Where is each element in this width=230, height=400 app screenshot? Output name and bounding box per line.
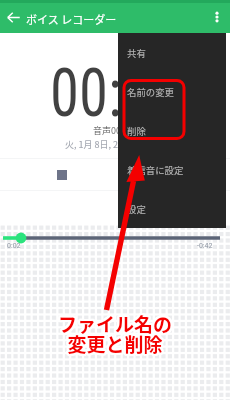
- staticText: 変更と削除: [0, 328, 229, 356]
- staticText: ファイル名の: [2, 311, 230, 339]
- staticText: ファイル名の: [0, 310, 230, 338]
- staticText: ファイル名の: [1, 308, 230, 336]
- staticText: 変更と削除: [0, 329, 228, 357]
- staticText: 音声007: [93, 124, 126, 137]
- staticText: 変更と削除: [0, 330, 228, 358]
- button[interactable]: 設定: [118, 189, 226, 228]
- staticText: ファイル名の: [1, 311, 230, 339]
- button[interactable]: 名前の変更: [118, 72, 226, 111]
- staticText: 変更と削除: [2, 330, 230, 358]
- staticText: 名前の変更: [127, 85, 174, 99]
- staticText: ファイル名の: [0, 310, 228, 338]
- button[interactable]: 着信音に設定: [118, 150, 226, 189]
- staticText: 変更と削除: [0, 328, 230, 356]
- staticText: ファイル名の: [2, 310, 230, 338]
- staticText: 変更と削除: [0, 329, 229, 357]
- button[interactable]: 共有: [118, 33, 226, 72]
- staticText: 変更と削除: [1, 329, 230, 357]
- staticText: ファイル名の: [0, 311, 229, 339]
- staticText: 変更と削除: [1, 332, 230, 360]
- staticText: ファイル名の: [0, 312, 229, 340]
- staticText: ファイル名の: [1, 309, 230, 337]
- staticText: ファイル名の: [0, 309, 228, 337]
- staticText: 変更と削除: [0, 330, 230, 358]
- staticText: ファイル名の: [0, 308, 230, 336]
- staticText: ファイル名の: [0, 312, 230, 340]
- staticText: ファイル名の: [0, 309, 229, 337]
- staticText: ボイス レコーダー: [26, 11, 117, 27]
- staticText: 変更と削除: [0, 332, 230, 360]
- staticText: 変更と削除: [1, 328, 230, 356]
- staticText: 変更と削除: [2, 331, 230, 359]
- staticText: 共有: [127, 46, 146, 60]
- staticText: 変更と削除: [0, 331, 229, 359]
- staticText: 変更と削除: [1, 331, 230, 359]
- staticText: 変更と削除: [2, 329, 230, 357]
- button[interactable]: Stop: [46, 159, 77, 190]
- staticText: ファイル名の: [0, 308, 229, 336]
- staticText: 設定: [127, 202, 146, 216]
- button[interactable]: Back: [2, 6, 24, 28]
- staticText: 変更と削除: [0, 332, 229, 360]
- button[interactable]: 削除: [118, 111, 226, 150]
- staticText: -0:42: [197, 242, 213, 250]
- button[interactable]: More options: [206, 6, 228, 28]
- staticText: 着信音に設定: [127, 163, 184, 177]
- staticText: ファイル名の: [1, 312, 230, 340]
- staticText: 変更と削除: [0, 331, 228, 359]
- staticText: ファイル名の: [2, 309, 230, 337]
- staticText: ファイル名の: [0, 311, 228, 339]
- staticText: 0:02: [7, 242, 21, 250]
- staticText: 削除: [127, 124, 146, 138]
- staticText: 火, 1月 8日, 2019: [65, 138, 134, 151]
